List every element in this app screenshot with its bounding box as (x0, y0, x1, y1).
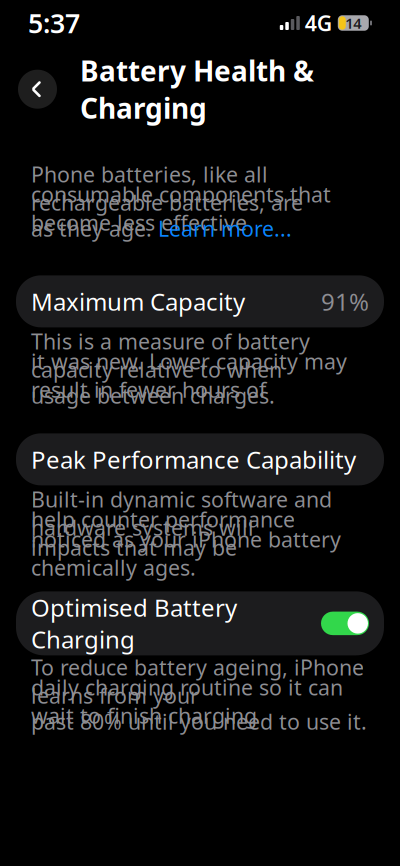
button[interactable]: Learn more... (158, 214, 292, 242)
staticText: noticed as your iPhone battery chemicall… (31, 525, 341, 582)
staticText: help counter performance impacts that ma… (31, 505, 295, 562)
staticText: Maximum Capacity (31, 285, 245, 317)
staticText: daily charging routine so it can wait to… (31, 673, 343, 730)
button[interactable]: Back (18, 70, 57, 109)
button[interactable]: Maximum Capacity (16, 275, 384, 327)
staticText: Peak Performance Capability (31, 443, 356, 475)
staticText: Learn more... (158, 214, 292, 242)
staticText: 91% (321, 285, 369, 317)
staticText: Battery Health & Charging (80, 52, 314, 126)
button[interactable]: Peak Performance Capability (16, 433, 384, 485)
staticText: it was new. Lower capacity may result in… (31, 347, 347, 404)
staticText: 14 (345, 13, 361, 33)
staticText: To reduce battery ageing, iPhone learns … (31, 653, 364, 710)
staticText: Phone batteries, like all rechargeable b… (31, 160, 303, 217)
staticText: This is a measure of battery capacity re… (31, 327, 310, 384)
button[interactable]: Optimised Battery Charging toggle (321, 612, 369, 635)
staticText: as they age. (31, 214, 158, 242)
staticText: past 80% until you need to use it. (31, 707, 367, 735)
staticText: 4G (305, 9, 332, 37)
staticText: Built-in dynamic software and hardware s… (31, 485, 332, 542)
button[interactable]: Optimised Battery Charging (16, 591, 384, 655)
staticText: Optimised Battery Charging (31, 591, 237, 655)
staticText: usage between charges. (31, 381, 275, 409)
staticText: consumable components that become less e… (31, 180, 331, 237)
staticText: 5:37 (28, 5, 80, 41)
